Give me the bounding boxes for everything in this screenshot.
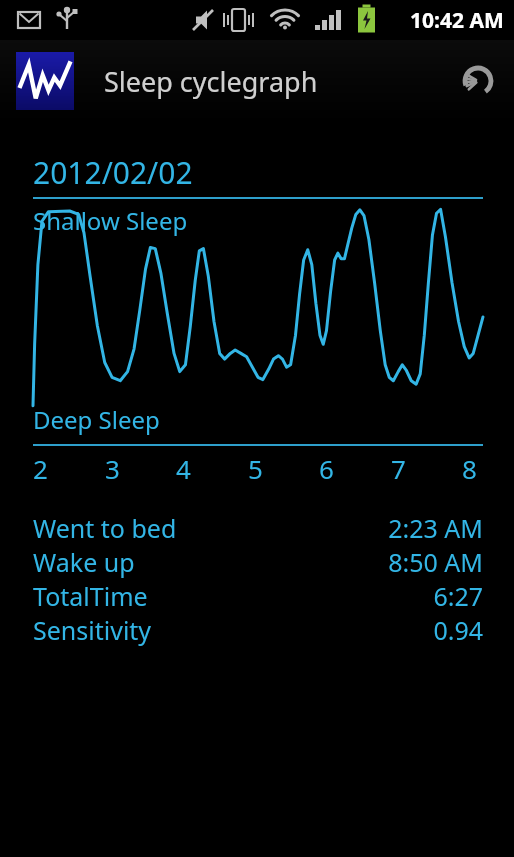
- button[interactable]: TotalTime: [33, 579, 483, 613]
- staticText: 8:50 AM: [388, 545, 483, 579]
- staticText: 2: [33, 451, 48, 483]
- button[interactable]: Went to bed: [33, 511, 483, 545]
- button[interactable]: Sensitivity: [33, 613, 483, 647]
- staticText: 10:42 AM: [410, 6, 504, 35]
- staticText: 7: [391, 451, 406, 483]
- button[interactable]: 2012/02/02: [33, 152, 193, 193]
- staticText: 0.94: [433, 613, 483, 647]
- staticText: 5: [248, 451, 263, 483]
- staticText: 3: [105, 451, 120, 483]
- button[interactable]: App icon: [16, 52, 74, 110]
- staticText: Went to bed: [33, 511, 177, 545]
- staticText: 8: [462, 451, 477, 483]
- staticText: 6:27: [433, 579, 483, 613]
- staticText: 2:23 AM: [388, 511, 483, 545]
- staticText: 4: [176, 451, 191, 483]
- staticText: Sleep cyclegraph: [104, 63, 454, 100]
- staticText: Deep Sleep: [33, 403, 160, 436]
- button[interactable]: History: [454, 57, 502, 105]
- staticText: TotalTime: [33, 579, 148, 613]
- staticText: Sensitivity: [33, 613, 152, 647]
- staticText: Wake up: [33, 545, 135, 579]
- button[interactable]: Wake up: [33, 545, 483, 579]
- staticText: Shallow Sleep: [33, 204, 188, 237]
- staticText: 6: [319, 451, 334, 483]
